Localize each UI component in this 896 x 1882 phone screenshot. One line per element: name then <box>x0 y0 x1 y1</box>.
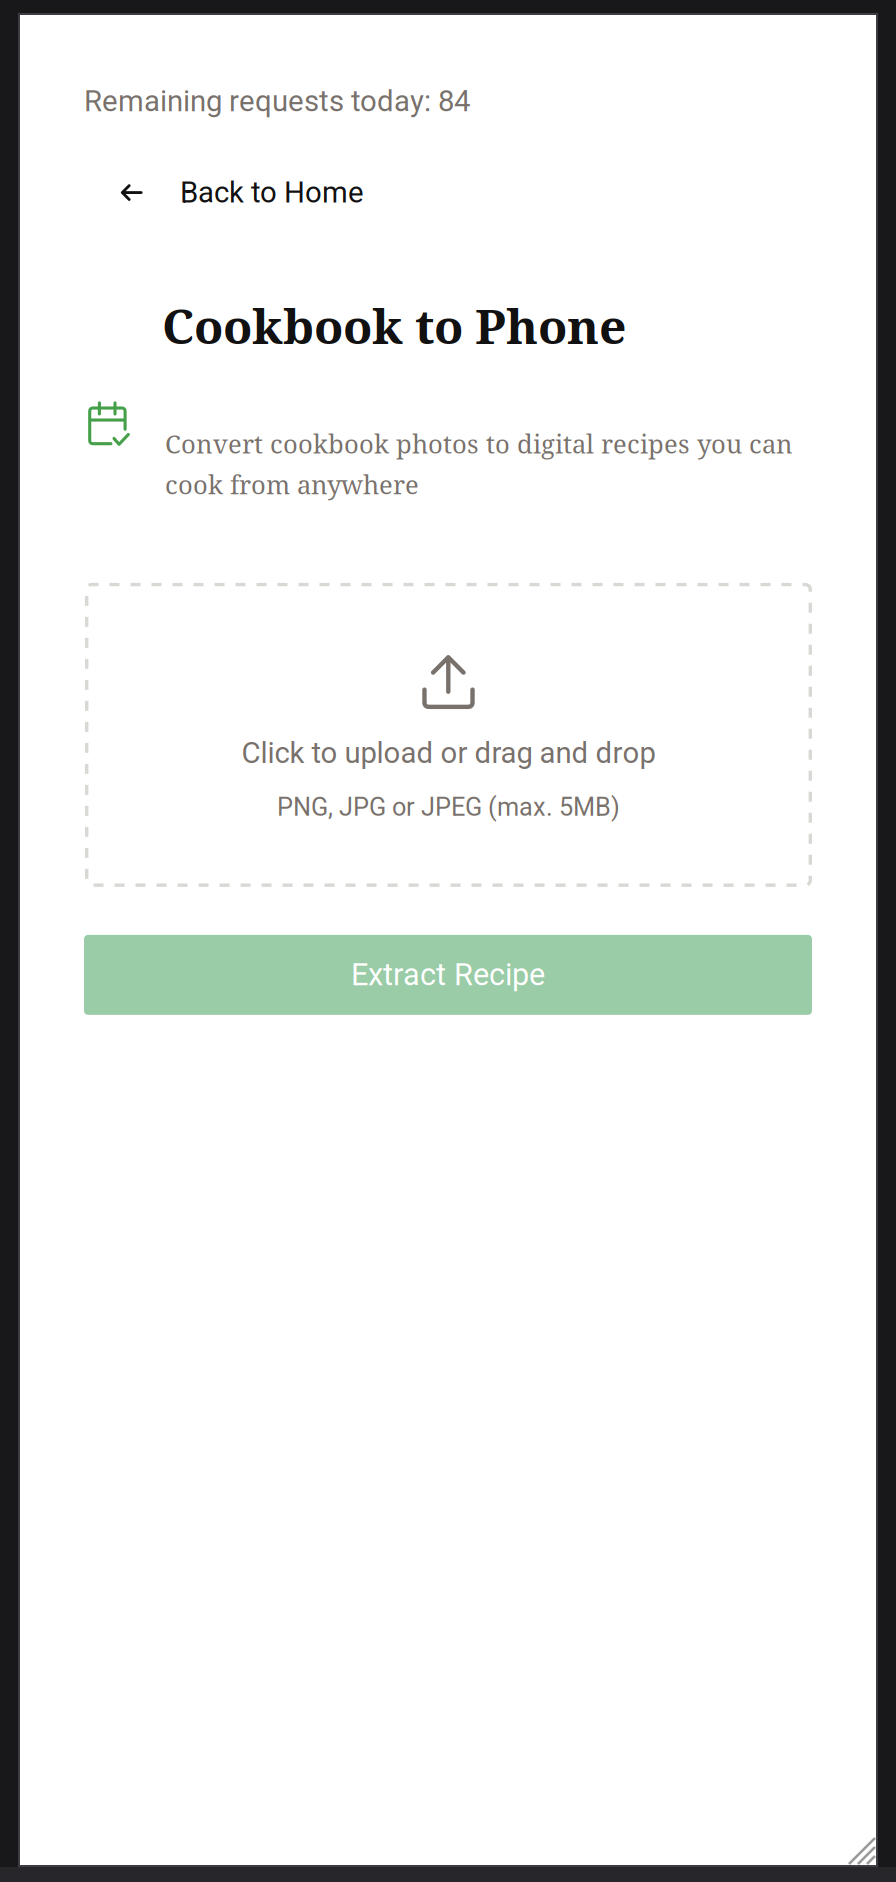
staticText: Click to upload or drag and drop <box>241 736 655 770</box>
button[interactable]: Back to Home <box>20 169 364 216</box>
staticText: PNG, JPG or JPEG (max. 5MB) <box>277 792 620 822</box>
staticText: Convert cookbook photos to digital recip… <box>165 426 793 502</box>
button[interactable]: Click to upload or drag and drop <box>85 583 812 887</box>
staticText: Cookbook to Phone <box>162 293 626 358</box>
staticText: Extract Recipe <box>351 957 545 993</box>
button[interactable]: Extract Recipe <box>84 935 812 1015</box>
staticText: Back to Home <box>180 175 364 210</box>
staticText: Remaining requests today: 84 <box>84 84 470 118</box>
